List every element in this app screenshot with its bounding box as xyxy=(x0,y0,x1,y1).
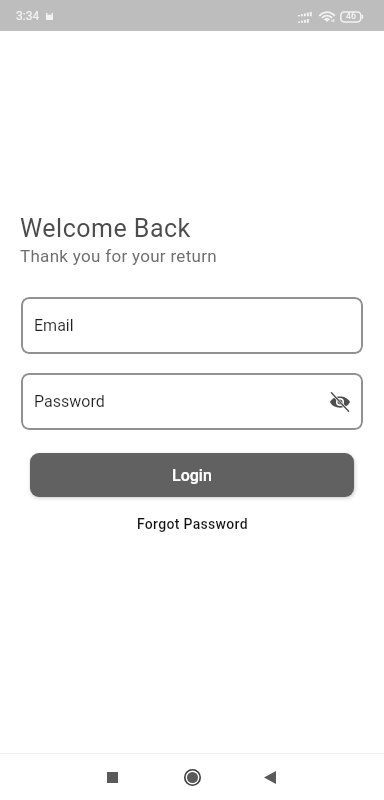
button[interactable]: Email xyxy=(21,297,363,354)
staticText: Password xyxy=(34,392,105,411)
button[interactable]: Recent apps xyxy=(88,754,137,800)
staticText: Welcome Back xyxy=(20,214,191,243)
staticText: Thank you for your return xyxy=(20,246,217,266)
button[interactable]: Show password xyxy=(325,387,355,417)
button[interactable]: Back xyxy=(246,754,294,800)
button[interactable]: Password xyxy=(21,373,363,430)
staticText: 3:34 xyxy=(16,9,40,23)
staticText: Login xyxy=(172,466,212,485)
button[interactable]: Login xyxy=(30,453,354,497)
button[interactable]: Home xyxy=(167,754,217,800)
button[interactable]: Forgot Password xyxy=(131,512,254,536)
staticText: Email xyxy=(34,316,74,335)
staticText: 46 xyxy=(346,11,357,22)
